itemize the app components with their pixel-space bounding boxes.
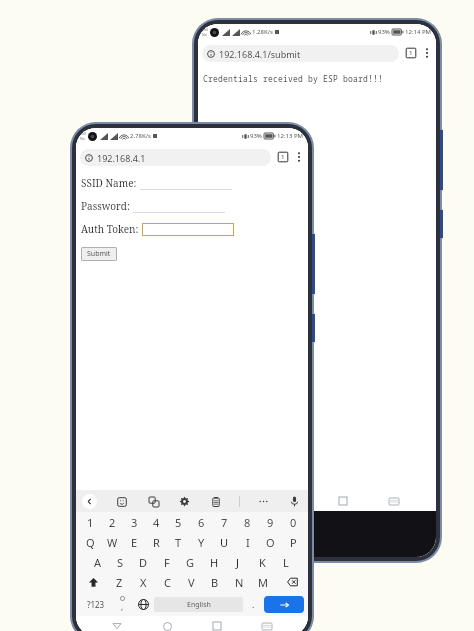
button[interactable]: ?123: [80, 592, 112, 616]
button[interactable]: Change language: [133, 592, 154, 616]
button[interactable]: Emoji: [114, 494, 129, 509]
button[interactable]: U: [213, 532, 236, 552]
button[interactable]: [140, 177, 232, 190]
button[interactable]: Recents: [334, 492, 352, 510]
button[interactable]: Comma: [112, 592, 133, 616]
staticText: Password:: [81, 199, 130, 213]
button[interactable]: Q: [79, 532, 101, 552]
staticText: ,: [121, 601, 124, 612]
button[interactable]: D: [132, 552, 155, 572]
button[interactable]: W: [101, 532, 123, 552]
staticText: G: [186, 555, 195, 570]
staticText: Q: [86, 535, 95, 550]
button[interactable]: R: [145, 532, 167, 552]
button[interactable]: C: [155, 572, 179, 592]
staticText: 2: [109, 515, 116, 530]
button[interactable]: [133, 200, 225, 213]
button[interactable]: Hide keyboard: [82, 494, 97, 509]
button[interactable]: Tabs: [405, 47, 417, 59]
button[interactable]: I: [236, 532, 259, 552]
staticText: S: [117, 555, 124, 570]
button[interactable]: 0: [282, 512, 305, 532]
button[interactable]: Home: [282, 492, 300, 510]
button[interactable]: Voice input: [287, 494, 302, 509]
button[interactable]: 192.168.4.1: [80, 149, 271, 166]
button[interactable]: 7: [213, 512, 236, 532]
button[interactable]: More options: [294, 150, 304, 164]
button[interactable]: A: [86, 552, 109, 572]
button[interactable]: Shift: [78, 572, 108, 592]
button[interactable]: Submit: [81, 247, 117, 261]
button[interactable]: 6: [190, 512, 213, 532]
staticText: P: [290, 535, 297, 550]
button[interactable]: X: [131, 572, 155, 592]
button[interactable]: Back: [231, 492, 249, 510]
button[interactable]: 9: [259, 512, 282, 532]
button[interactable]: M: [251, 572, 275, 592]
button[interactable]: 2: [101, 512, 123, 532]
staticText: R: [153, 535, 160, 550]
button[interactable]: E: [123, 532, 145, 552]
staticText: 4: [153, 515, 160, 530]
staticText: Cell: [80, 131, 86, 136]
staticText: Y: [198, 535, 205, 550]
staticText: E: [131, 535, 138, 550]
button[interactable]: [142, 223, 234, 236]
staticText: L: [283, 555, 289, 570]
staticText: F: [164, 555, 170, 570]
button[interactable]: N: [227, 572, 251, 592]
staticText: T: [175, 535, 182, 550]
staticText: K: [259, 555, 266, 570]
staticText: A: [94, 555, 102, 570]
button[interactable]: More options: [422, 46, 432, 60]
button[interactable]: Period: [243, 592, 264, 616]
staticText: Credentials received by ESP board!!!: [203, 73, 383, 84]
staticText: 12:13 PM: [277, 132, 304, 140]
button[interactable]: 1: [79, 512, 101, 532]
button[interactable]: 8: [236, 512, 259, 532]
button[interactable]: F: [155, 552, 178, 572]
staticText: No: [80, 136, 85, 141]
button[interactable]: English: [154, 597, 243, 612]
staticText: U: [220, 535, 229, 550]
button[interactable]: O: [259, 532, 282, 552]
staticText: 192.168.4.1/submit: [219, 48, 301, 60]
button[interactable]: 5: [167, 512, 190, 532]
button[interactable]: Home: [158, 617, 176, 631]
staticText: H: [210, 555, 219, 570]
button[interactable]: 4: [145, 512, 167, 532]
button[interactable]: L: [274, 552, 298, 572]
staticText: M: [258, 575, 268, 590]
staticText: Submit: [87, 249, 111, 259]
button[interactable]: Back: [108, 617, 126, 631]
button[interactable]: V: [179, 572, 203, 592]
staticText: D: [139, 555, 148, 570]
button[interactable]: G: [178, 552, 202, 572]
button[interactable]: P: [282, 532, 305, 552]
button[interactable]: Y: [190, 532, 213, 552]
button[interactable]: S: [109, 552, 132, 572]
button[interactable]: 3: [123, 512, 145, 532]
button[interactable]: Z: [108, 572, 131, 592]
button[interactable]: H: [202, 552, 226, 572]
button[interactable]: Backspace: [275, 572, 306, 592]
staticText: 7: [221, 515, 228, 530]
button[interactable]: Enter: [264, 596, 304, 613]
staticText: 192.168.4.1: [97, 152, 146, 164]
button[interactable]: Translate: [146, 494, 161, 509]
button[interactable]: Keyboard: [385, 492, 403, 510]
button[interactable]: Tabs: [277, 151, 289, 163]
button[interactable]: 192.168.4.1/submit: [202, 45, 399, 62]
button[interactable]: Clipboard: [208, 494, 223, 509]
button[interactable]: Recents: [208, 617, 226, 631]
button[interactable]: J: [226, 552, 250, 572]
button[interactable]: More: [256, 494, 271, 509]
staticText: 93%: [378, 28, 390, 36]
staticText: 5: [175, 515, 182, 530]
button[interactable]: Settings: [177, 494, 192, 509]
button[interactable]: K: [250, 552, 274, 572]
button[interactable]: T: [167, 532, 190, 552]
button[interactable]: B: [203, 572, 227, 592]
staticText: 1: [87, 515, 94, 530]
button[interactable]: Keyboard: [258, 617, 276, 631]
